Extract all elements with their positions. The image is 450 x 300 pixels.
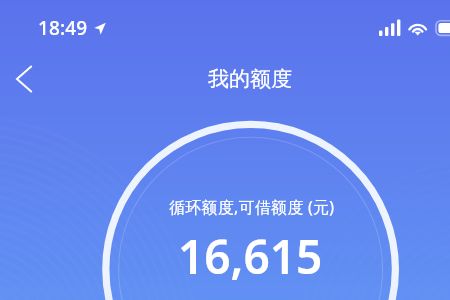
staticText: 16,615	[178, 225, 323, 288]
button[interactable]: Back	[7, 62, 41, 96]
staticText: 18:49	[38, 15, 88, 41]
staticText: 我的额度	[208, 66, 292, 92]
staticText: 循环额度,可借额度 (元)	[169, 196, 335, 218]
